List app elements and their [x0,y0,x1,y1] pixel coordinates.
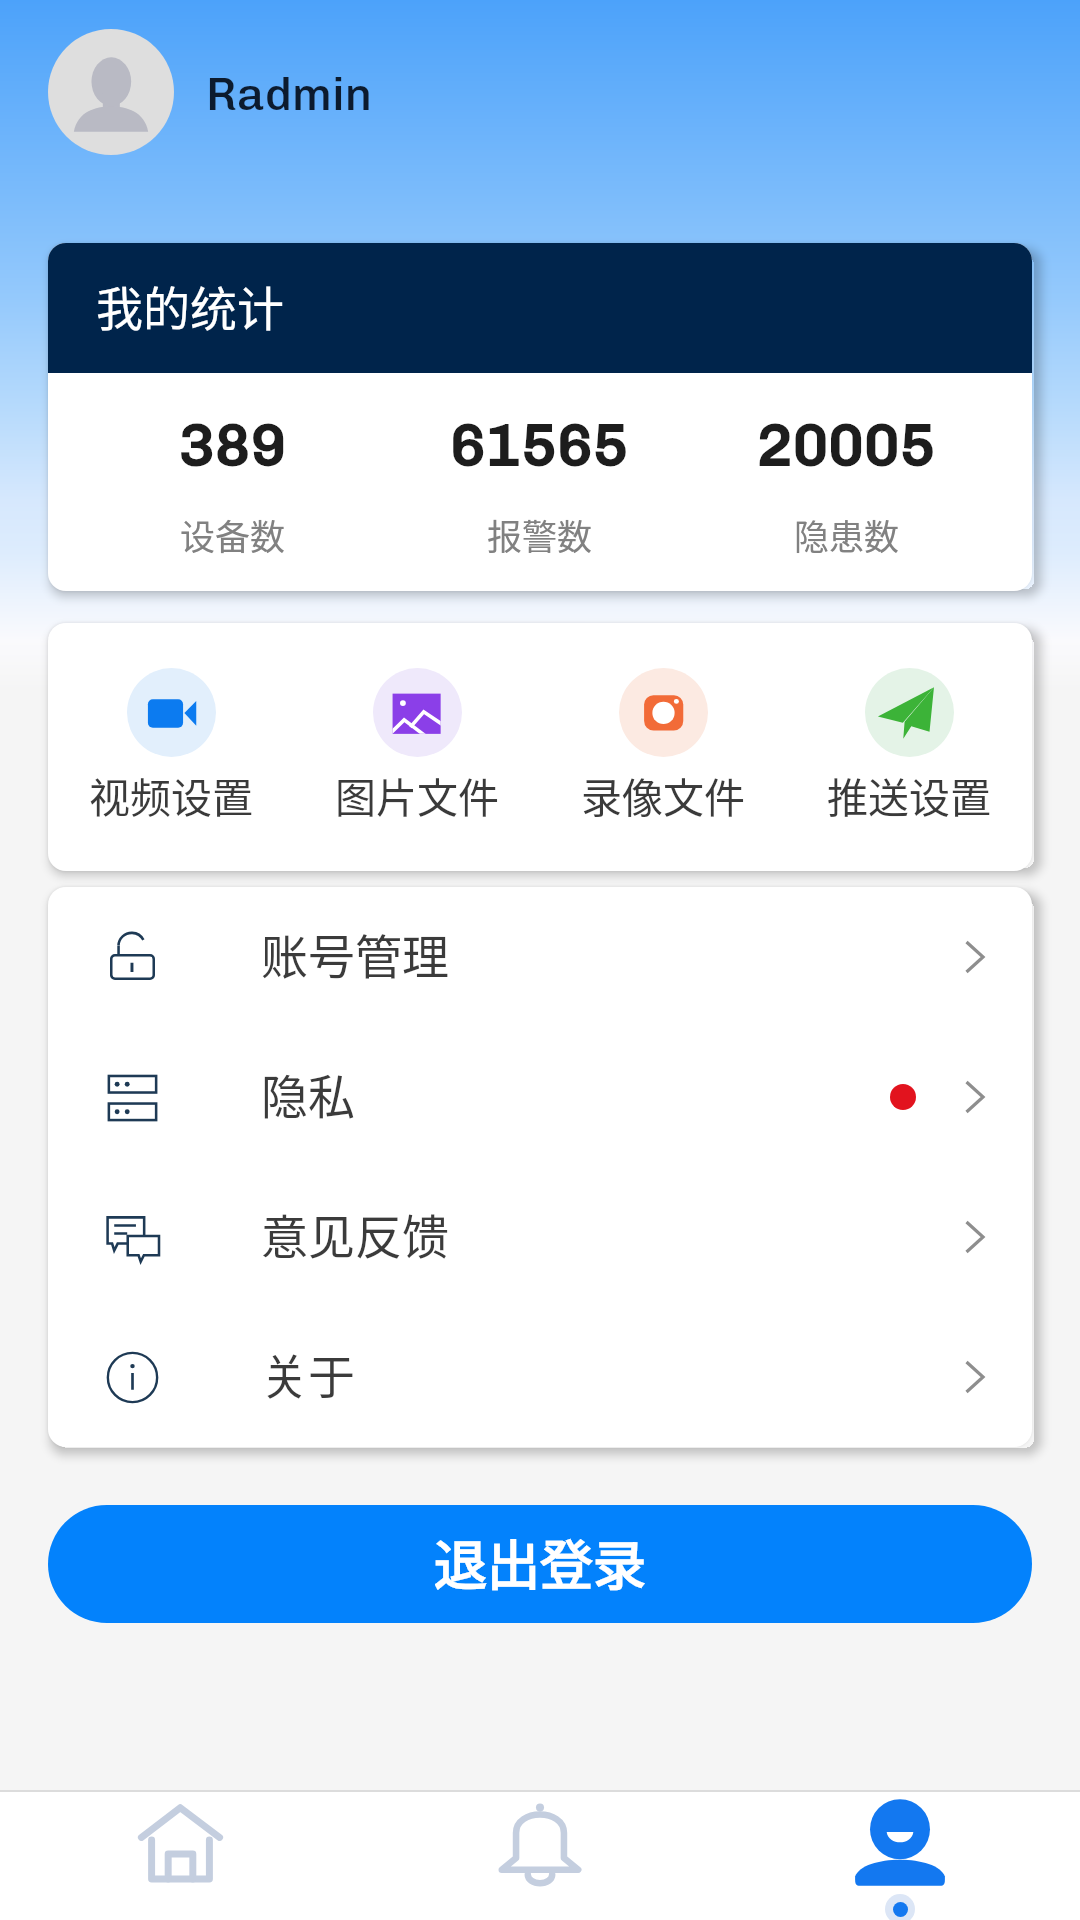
button[interactable]: 录像文件 [540,623,786,824]
button[interactable]: 视频设置 [48,623,294,824]
staticText: 设备数 [180,509,286,560]
button[interactable]: 意见反馈 [48,1167,1032,1307]
button[interactable]: Notifications [360,1792,720,1920]
staticText: 录像文件 [581,765,745,824]
staticText: 报警数 [487,509,593,560]
staticText: Radmin [206,67,373,122]
staticText: 意见反馈 [261,1199,449,1267]
staticText: 隐私 [261,1059,355,1127]
button[interactable]: 账号管理 [48,887,1032,1027]
button[interactable]: 退出登录 [48,1505,1032,1623]
staticText: 61565 [450,410,629,479]
staticText: 账号管理 [261,919,449,987]
button[interactable]: Radmin [48,29,373,155]
staticText: 20005 [757,410,936,479]
button[interactable]: 隐私 [48,1027,1032,1167]
staticText: 视频设置 [89,765,253,824]
button[interactable]: Home [0,1792,360,1920]
staticText: 图片文件 [335,765,499,824]
staticText: 389 [179,410,287,479]
staticText: 退出登录 [434,1524,646,1601]
staticText: 隐患数 [794,509,900,560]
staticText: 我的统计 [96,271,284,339]
button[interactable]: 图片文件 [294,623,540,824]
staticText: 关于 [261,1339,355,1407]
button[interactable]: 推送设置 [786,623,1032,824]
staticText: 推送设置 [827,765,991,824]
button[interactable]: 关于 [48,1307,1032,1447]
button[interactable]: Profile [720,1792,1080,1920]
